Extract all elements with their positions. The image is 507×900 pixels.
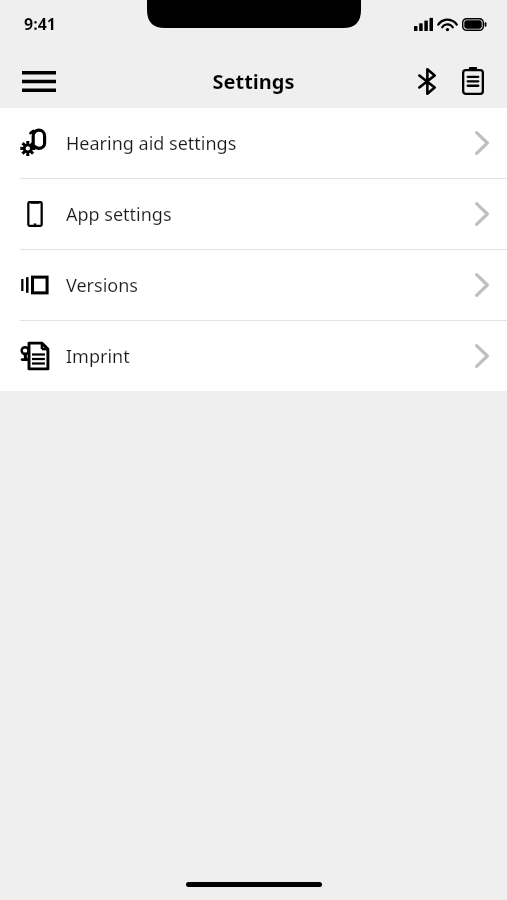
- button[interactable]: Programs: [453, 61, 493, 101]
- staticText: App settings: [66, 202, 172, 227]
- staticText: Hearing aid settings: [66, 131, 237, 156]
- staticText: Settings: [0, 68, 507, 95]
- button[interactable]: App settings: [0, 179, 507, 249]
- button[interactable]: Versions: [0, 250, 507, 320]
- button[interactable]: Imprint: [0, 321, 507, 391]
- button[interactable]: Hearing aid settings: [0, 108, 507, 178]
- staticText: 9:41: [24, 13, 56, 35]
- staticText: Imprint: [66, 344, 130, 369]
- button[interactable]: Bluetooth: [407, 61, 447, 101]
- button[interactable]: Menu: [16, 58, 62, 104]
- staticText: Versions: [66, 273, 138, 298]
